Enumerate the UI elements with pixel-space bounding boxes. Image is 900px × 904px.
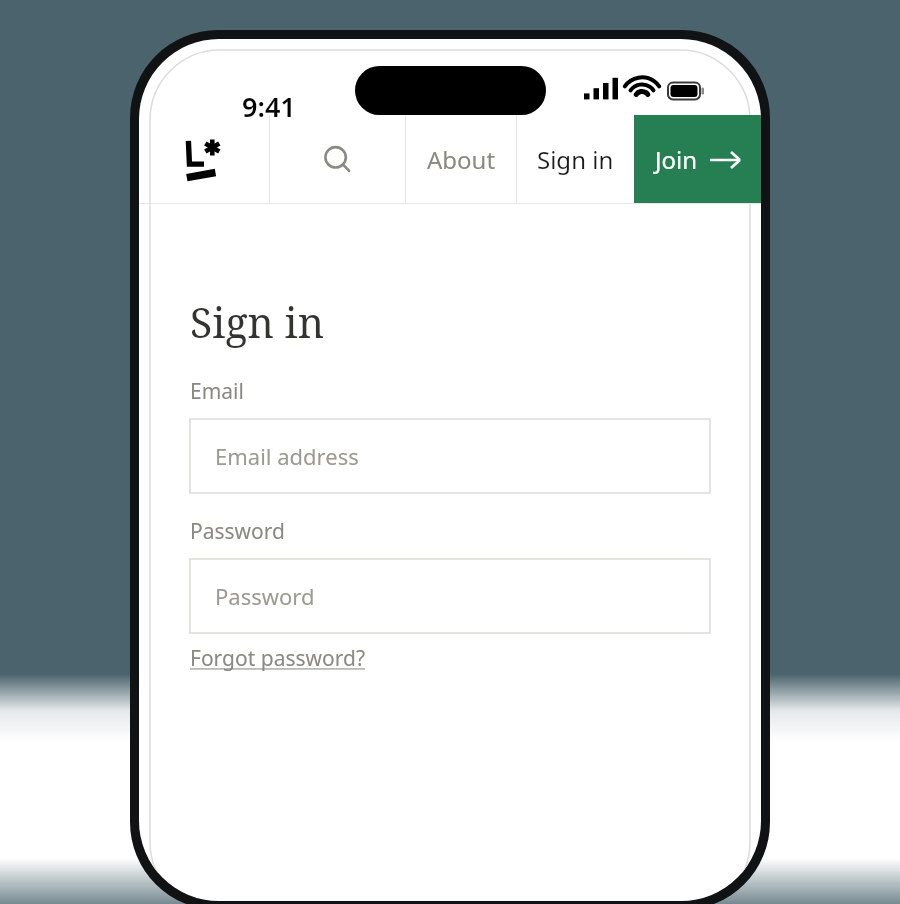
staticText: Forgot password? [190, 644, 366, 673]
staticText: Password [215, 581, 315, 611]
button[interactable]: Email address [190, 419, 710, 493]
staticText: Email [190, 377, 244, 406]
button[interactable]: Password [190, 559, 710, 633]
button[interactable]: Search [270, 115, 405, 204]
staticText: Sign in [190, 294, 325, 350]
staticText: Email address [215, 441, 359, 471]
button[interactable]: Home [139, 115, 269, 204]
button[interactable]: Join [634, 115, 761, 204]
staticText: About [427, 143, 496, 176]
staticText: Sign in [537, 143, 614, 176]
button[interactable]: Forgot password? [190, 644, 366, 673]
staticText: 9:41 [242, 88, 296, 125]
button[interactable]: About [406, 115, 516, 204]
button[interactable]: Sign in [517, 115, 634, 204]
staticText: Join [655, 143, 698, 176]
staticText: Password [190, 517, 285, 546]
